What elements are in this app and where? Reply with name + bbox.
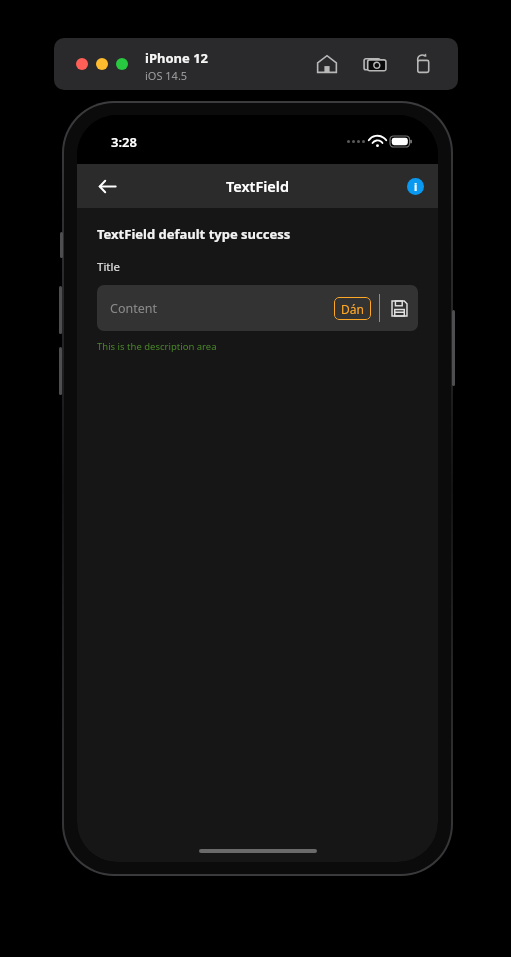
button[interactable]: Dán [334,297,371,320]
button[interactable]: Save [388,297,410,319]
button[interactable]: Home [314,51,340,77]
staticText: i [414,179,418,194]
staticText: Title [97,259,120,275]
staticText: This is the description area [97,340,217,353]
staticText: Content [110,300,157,317]
staticText: TextField [226,176,290,196]
button[interactable]: Info [407,178,424,195]
button[interactable]: Minimize [96,58,108,70]
staticText: iPhone 12 [145,49,208,67]
staticText: 3:28 [111,133,137,151]
button[interactable]: Close [76,58,88,70]
staticText: iOS 14.5 [145,68,188,83]
button[interactable]: Back [90,169,124,203]
button[interactable]: Maximize [116,58,128,70]
button[interactable]: Screenshot [362,51,388,77]
button[interactable]: Content [97,285,418,331]
staticText: Dán [341,301,364,317]
button[interactable]: Rotate [410,51,436,77]
staticText: TextField default type success [97,225,291,243]
